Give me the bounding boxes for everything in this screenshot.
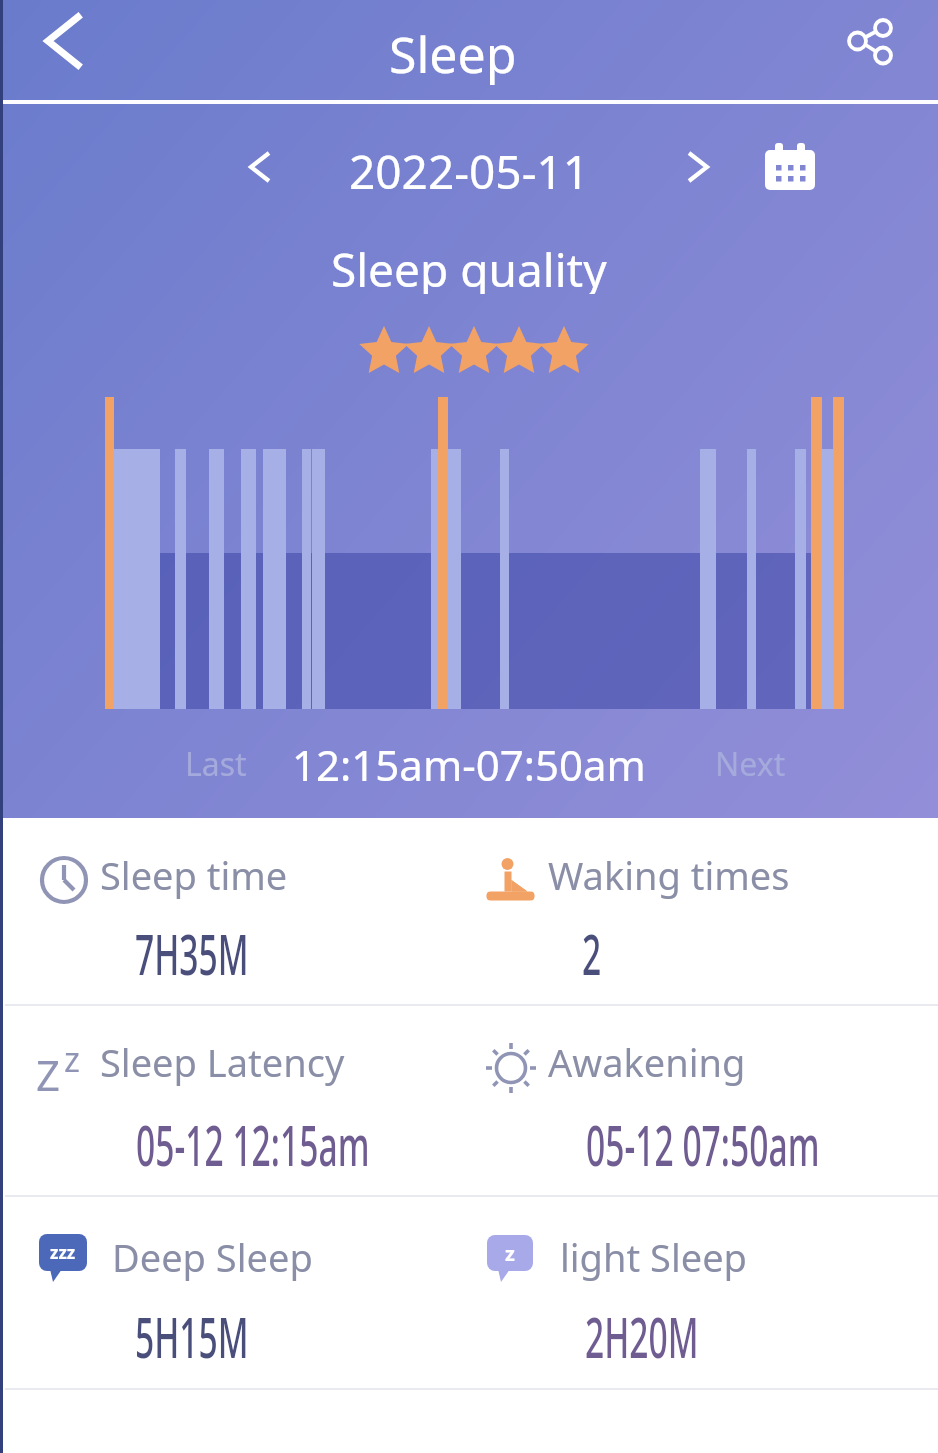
staticText: Awakening <box>548 1036 746 1088</box>
staticText: Z <box>36 1046 61 1103</box>
button[interactable] <box>762 141 818 193</box>
staticText: Sleep time <box>100 849 288 901</box>
staticText: 05-12 07:50am <box>586 1106 820 1182</box>
staticText: 2H20M <box>585 1298 699 1374</box>
staticText: 7H35M <box>135 915 249 991</box>
staticText: Sleep quality <box>331 238 607 294</box>
button[interactable] <box>672 144 720 192</box>
button[interactable] <box>238 144 286 192</box>
staticText: 2022-05-11 <box>349 140 590 196</box>
staticText: Deep Sleep <box>112 1231 313 1283</box>
staticText: 5H15M <box>135 1298 249 1374</box>
staticText: 12:15am-07:50am <box>292 736 646 792</box>
button[interactable]: Next <box>702 733 798 795</box>
staticText: zzz <box>50 1241 76 1264</box>
staticText: Next <box>715 742 786 786</box>
button[interactable] <box>28 4 100 76</box>
staticText: z <box>64 1036 80 1082</box>
staticText: Sleep Latency <box>100 1036 345 1088</box>
staticText: z <box>505 1240 515 1267</box>
button[interactable]: Last <box>168 733 264 795</box>
staticText: Sleep <box>389 20 517 88</box>
staticText: 05-12 12:15am <box>136 1106 370 1182</box>
staticText: Last <box>185 742 247 786</box>
staticText: light Sleep <box>560 1231 747 1283</box>
staticText: 2 <box>582 915 602 991</box>
staticText: Waking times <box>548 849 790 901</box>
button[interactable] <box>828 6 904 74</box>
